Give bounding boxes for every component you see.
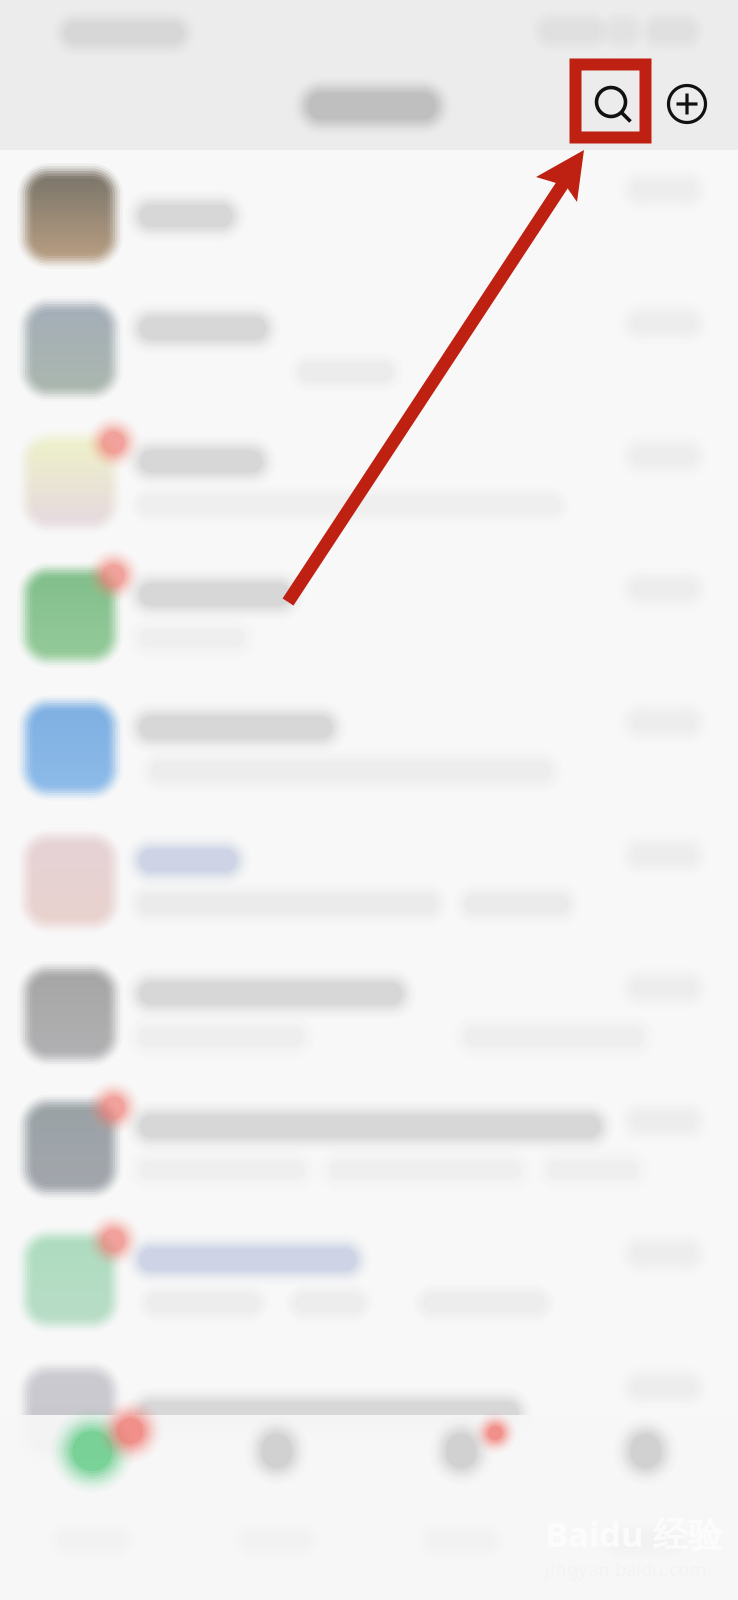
button[interactable] xyxy=(0,1214,738,1347)
button[interactable] xyxy=(0,815,738,948)
button[interactable]: Add xyxy=(655,72,719,136)
button[interactable] xyxy=(0,948,738,1081)
button[interactable] xyxy=(0,549,738,682)
button[interactable] xyxy=(0,283,738,416)
button[interactable] xyxy=(0,150,738,283)
button[interactable] xyxy=(0,416,738,549)
button[interactable] xyxy=(0,1347,738,1480)
button[interactable] xyxy=(0,1081,738,1214)
button[interactable] xyxy=(0,682,738,815)
button[interactable] xyxy=(184,1415,369,1600)
button[interactable]: Search xyxy=(581,72,653,144)
button[interactable] xyxy=(0,1415,184,1600)
button[interactable] xyxy=(369,1415,553,1600)
button[interactable] xyxy=(553,1415,738,1600)
